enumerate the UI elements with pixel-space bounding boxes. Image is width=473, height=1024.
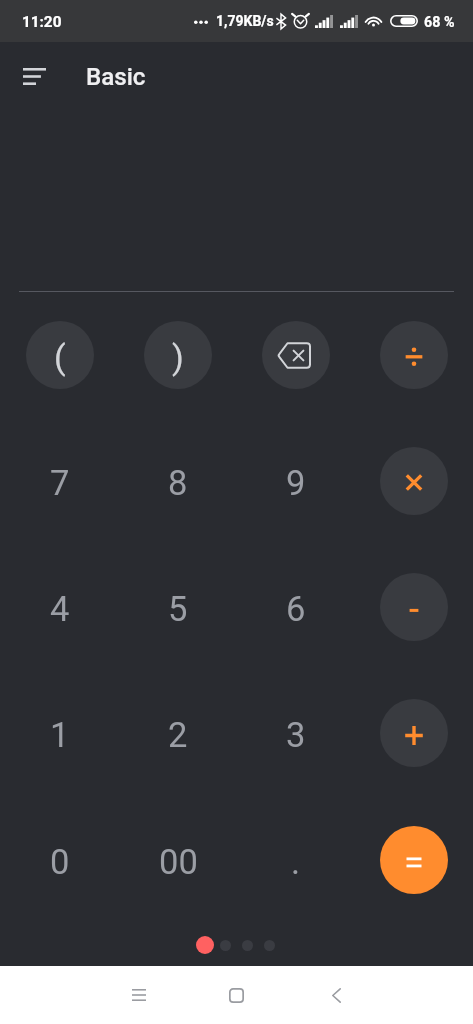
button[interactable]: Divide bbox=[355, 292, 473, 418]
button[interactable]: Minus bbox=[355, 544, 473, 670]
staticText: 5 bbox=[168, 589, 188, 629]
staticText: 8 bbox=[168, 463, 188, 503]
button[interactable]: Recent apps bbox=[115, 971, 163, 1019]
button[interactable]: 5 bbox=[119, 544, 237, 670]
button[interactable]: 1 bbox=[0, 670, 119, 796]
button[interactable]: Back bbox=[312, 971, 360, 1019]
button[interactable]: 9 bbox=[237, 418, 355, 544]
staticText: 3 bbox=[286, 715, 306, 755]
button[interactable]: Page 1 bbox=[196, 936, 214, 954]
staticText: ( bbox=[54, 337, 66, 377]
staticText: 2 bbox=[168, 715, 188, 755]
button[interactable]: Page 3 bbox=[242, 940, 253, 951]
button[interactable]: Home bbox=[212, 971, 260, 1019]
staticText: Basic bbox=[86, 63, 146, 91]
button[interactable]: Page 4 bbox=[264, 940, 275, 951]
button[interactable]: Plus bbox=[355, 670, 473, 796]
button[interactable]: 0 bbox=[0, 797, 119, 923]
staticText: 9 bbox=[286, 463, 306, 503]
staticText: 0 bbox=[50, 842, 70, 882]
staticText: 1 bbox=[50, 715, 70, 755]
staticText: 6 bbox=[286, 589, 306, 629]
staticText: 4 bbox=[50, 589, 70, 629]
staticText: ) bbox=[172, 337, 184, 377]
button[interactable]: 6 bbox=[237, 544, 355, 670]
button[interactable]: Menu bbox=[10, 52, 58, 100]
button[interactable]: Multiply bbox=[355, 418, 473, 544]
button[interactable]: 3 bbox=[237, 670, 355, 796]
staticText: 00 bbox=[159, 842, 198, 882]
button[interactable]: 2 bbox=[119, 670, 237, 796]
staticText: 7 bbox=[50, 463, 70, 503]
staticText: . bbox=[291, 842, 301, 882]
button[interactable]: 00 bbox=[119, 797, 237, 923]
staticText: 11:20 bbox=[22, 13, 62, 31]
button[interactable]: 4 bbox=[0, 544, 119, 670]
button[interactable]: Page 2 bbox=[220, 940, 231, 951]
button[interactable]: Equals bbox=[355, 797, 473, 923]
staticText: 1,79KB/s bbox=[216, 13, 274, 29]
button[interactable]: ) bbox=[119, 292, 237, 418]
button[interactable]: Backspace bbox=[237, 292, 355, 418]
staticText: 68 % bbox=[424, 14, 455, 31]
button[interactable]: ( bbox=[0, 292, 119, 418]
button[interactable]: 7 bbox=[0, 418, 119, 544]
button[interactable]: 8 bbox=[119, 418, 237, 544]
button[interactable]: . bbox=[237, 797, 355, 923]
